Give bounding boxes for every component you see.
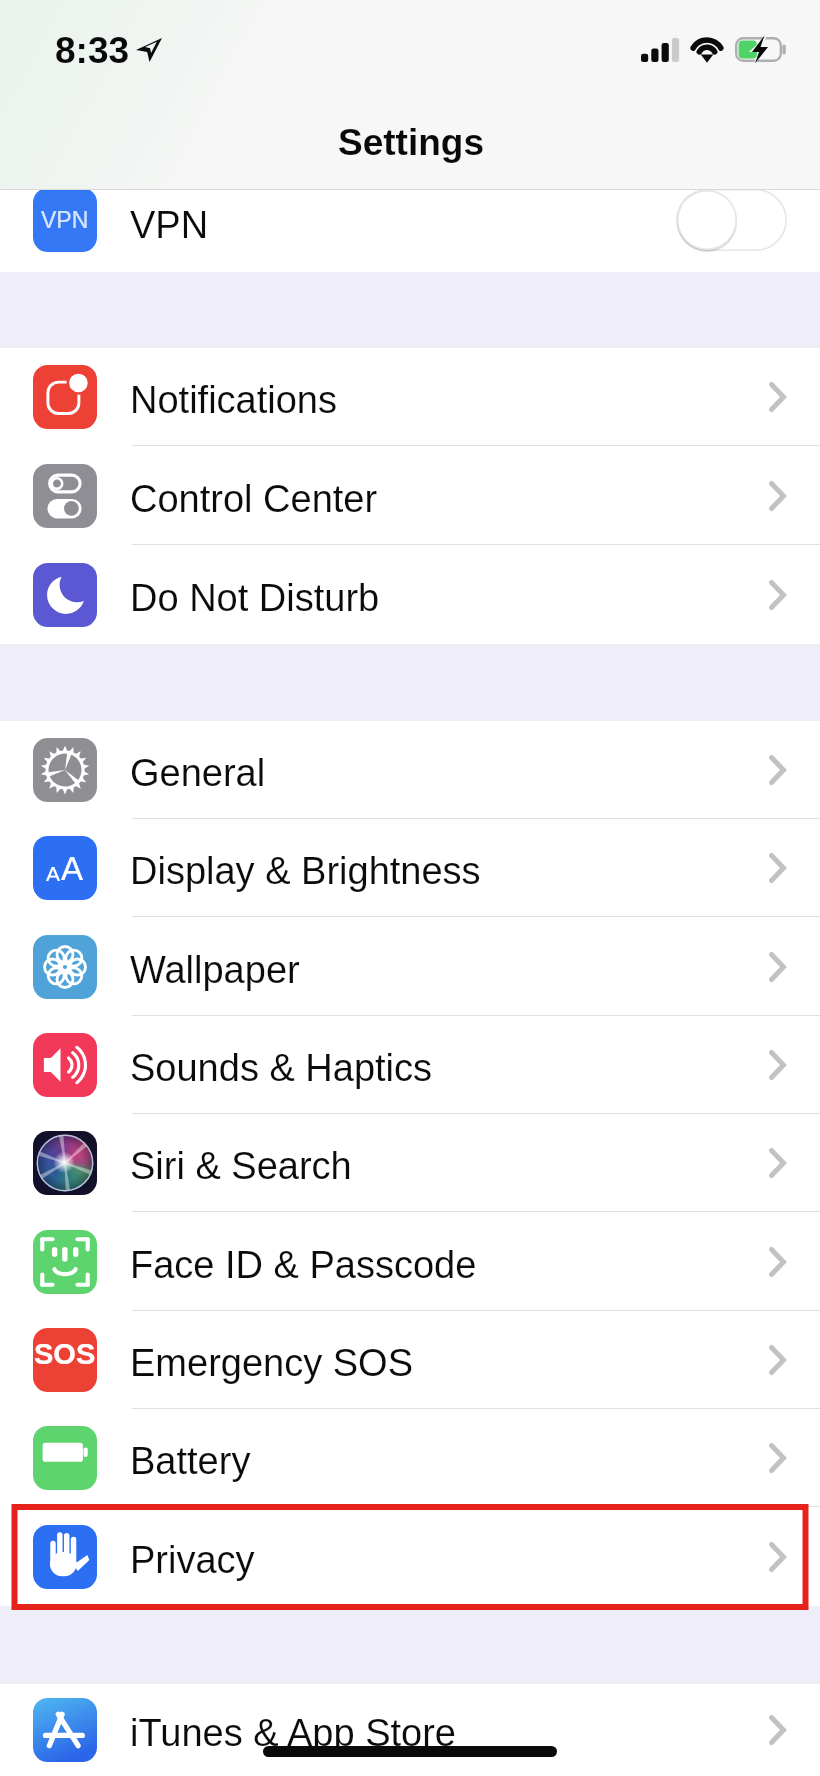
button[interactable]: Wallpaper [0,917,820,1016]
staticText: Control Center [130,478,378,520]
staticText: A [46,862,61,885]
staticText: Emergency SOS [130,1342,413,1384]
staticText: Sounds & Haptics [130,1047,433,1089]
button[interactable]: Do Not Disturb [0,545,820,644]
staticText: Battery [130,1440,251,1482]
button[interactable]: A [0,819,820,917]
staticText: SOS [34,1338,96,1370]
staticText: 8:33 [55,30,130,71]
button[interactable]: Privacy [0,1507,820,1606]
staticText: General [130,752,266,794]
button[interactable]: Sounds & Haptics [0,1016,820,1114]
staticText: VPN [41,207,89,233]
staticText: A [61,850,84,887]
button[interactable]: Face ID & Passcode [0,1212,820,1311]
button[interactable]: General [0,721,820,819]
staticText: Privacy [130,1539,255,1581]
button[interactable]: Notifications [0,348,820,446]
button[interactable]: Siri & Search [0,1114,820,1212]
staticText: VPN [130,204,209,246]
button[interactable]: Battery [0,1409,820,1507]
staticText: Notifications [130,379,337,421]
staticText: iTunes & App Store [130,1712,457,1754]
staticText: Wallpaper [130,949,300,991]
staticText: Siri & Search [130,1145,352,1187]
button[interactable]: VPN [0,190,820,272]
button[interactable]: Control Center [0,446,820,545]
staticText: Display & Brightness [130,850,481,892]
button[interactable]: SOS [0,1311,820,1409]
staticText: Do Not Disturb [130,577,380,619]
staticText: Settings [338,122,484,163]
staticText: Face ID & Passcode [130,1244,477,1286]
button[interactable]: iTunes & App Store [0,1684,820,1776]
